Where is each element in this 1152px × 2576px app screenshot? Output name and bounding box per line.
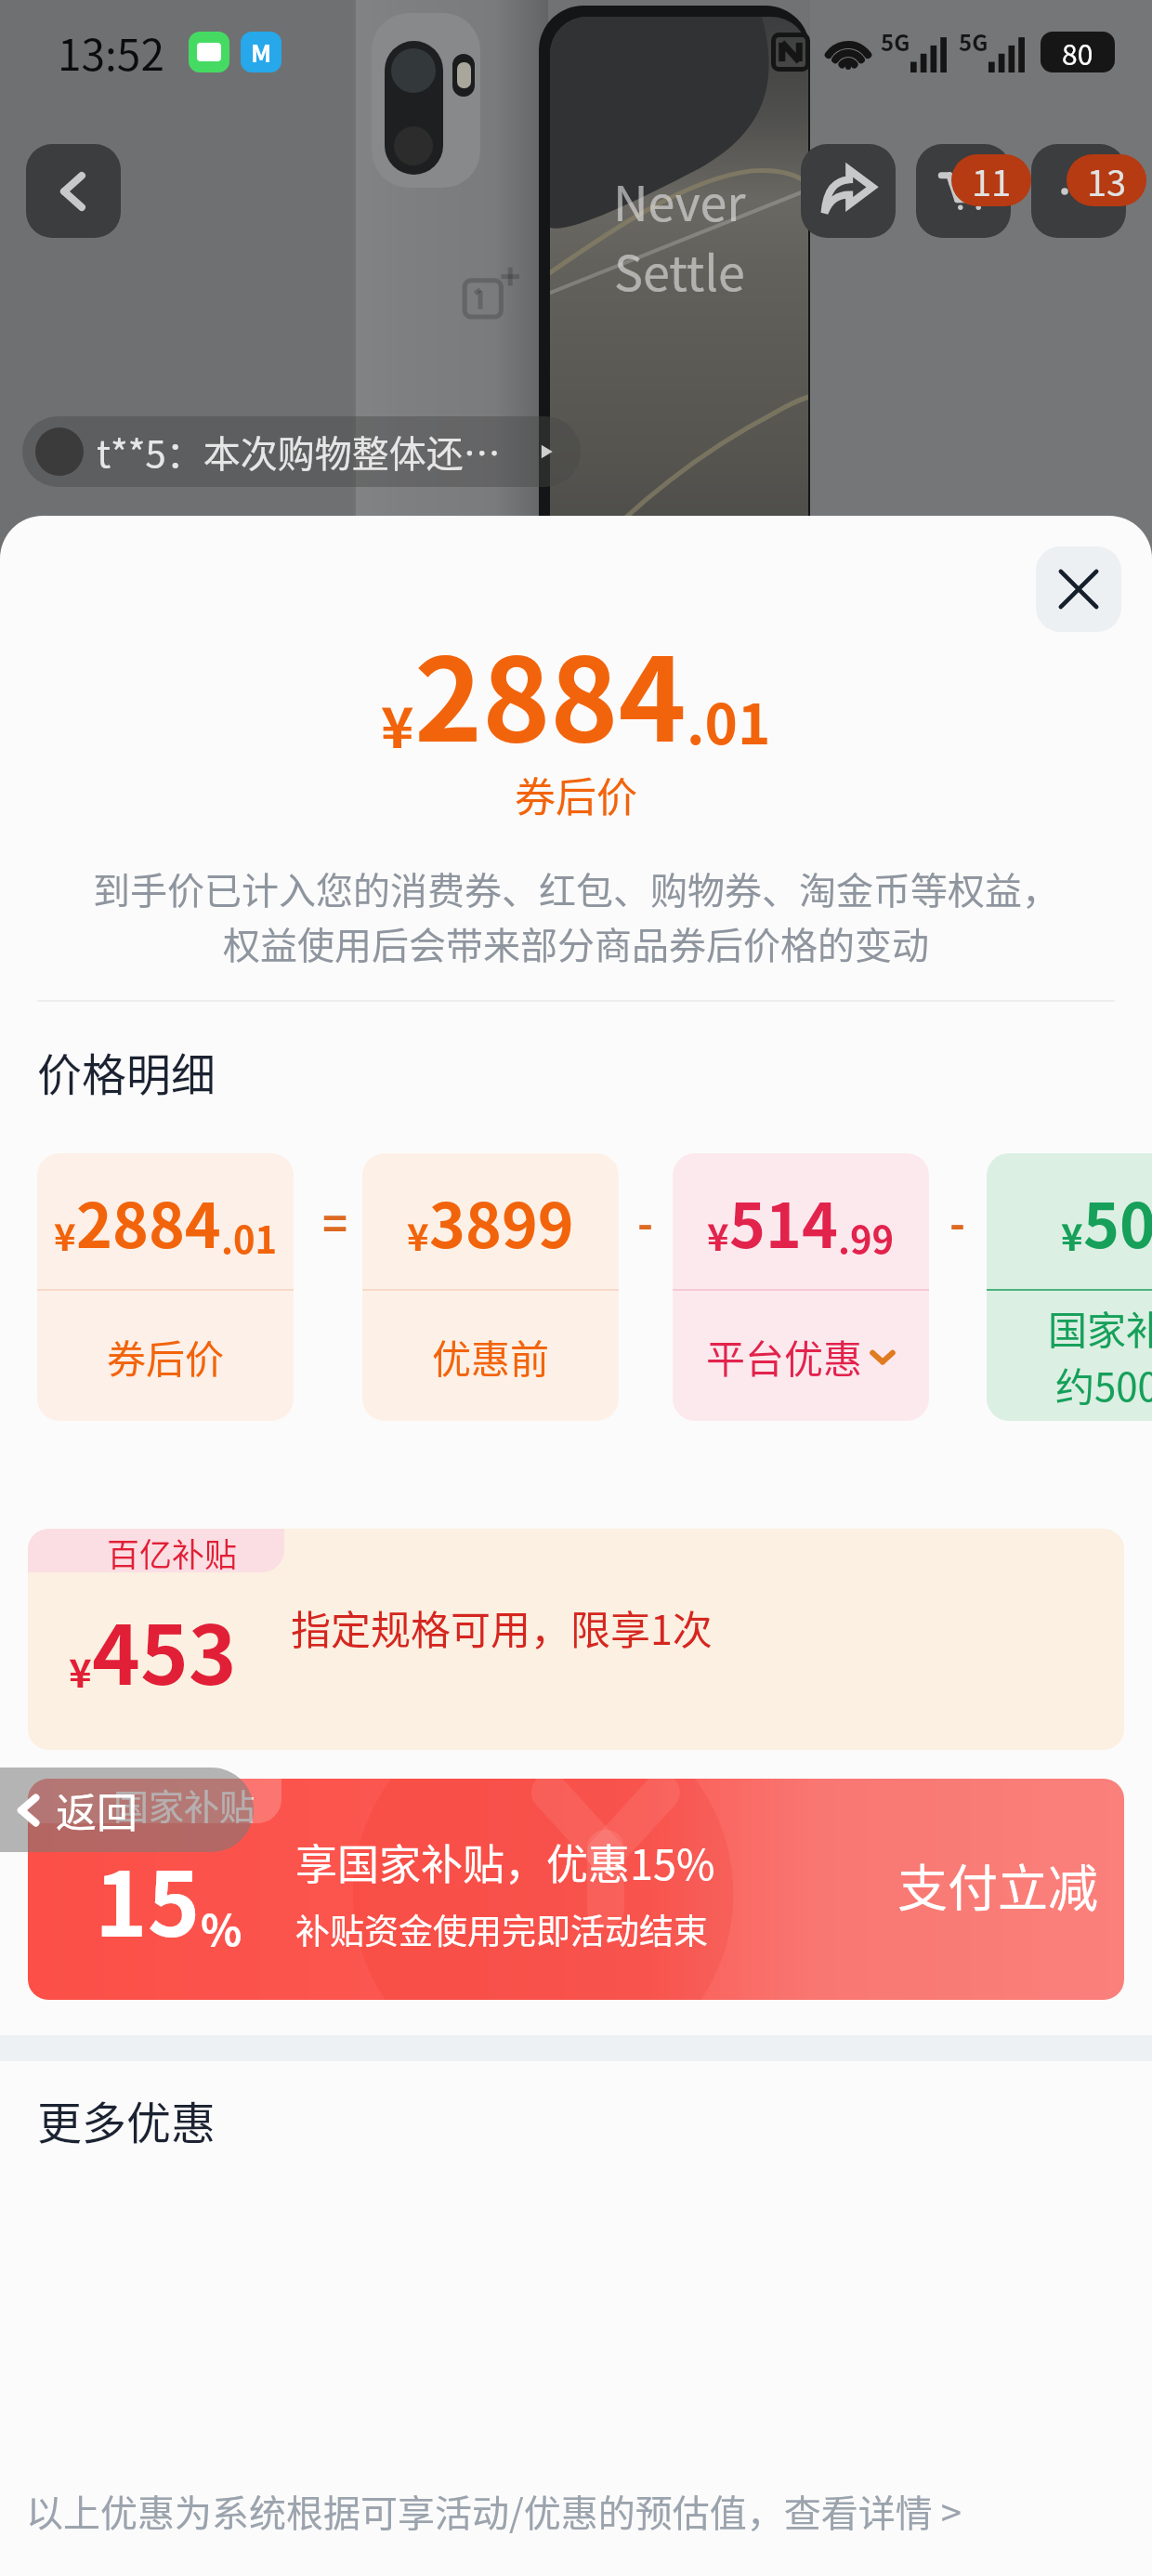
button[interactable]: t**5：本次购物整体还…: [22, 416, 581, 487]
button[interactable]: Back: [0, 1768, 254, 1852]
staticText: -: [949, 1190, 966, 1253]
staticText: 5G: [881, 25, 910, 58]
staticText: ¥: [54, 1208, 76, 1262]
staticText: Never: [613, 165, 746, 235]
staticText: 价格明细: [37, 1039, 216, 1104]
staticText: 2884: [76, 1176, 221, 1266]
staticText: ¥: [707, 1208, 729, 1262]
staticText: 11: [972, 155, 1012, 206]
staticText: 80: [1062, 33, 1093, 72]
button[interactable]: Back: [26, 144, 121, 238]
staticText: Settle: [614, 235, 745, 305]
staticText: .01: [687, 679, 771, 760]
staticText: 国家补贴: [1048, 1299, 1152, 1356]
staticText: 国家补贴: [113, 1779, 255, 1823]
staticText: 平台优惠: [706, 1328, 863, 1385]
staticText: 514: [729, 1176, 838, 1266]
staticText: 2884: [414, 608, 687, 775]
staticText: ¥: [69, 1642, 92, 1699]
staticText: 优惠前: [432, 1328, 550, 1385]
button[interactable]: More: [1031, 144, 1126, 238]
button[interactable]: 百亿补贴: [28, 1529, 1124, 1750]
staticText: 补贴资金使用完即活动结束: [295, 1904, 708, 1954]
staticText: 享国家补贴，优惠15%: [295, 1832, 715, 1892]
button[interactable]: ¥: [362, 1153, 619, 1421]
staticText: 13: [1087, 155, 1127, 206]
button[interactable]: Close: [1036, 546, 1121, 632]
button[interactable]: Share: [801, 144, 896, 238]
staticText: 5G: [959, 25, 988, 58]
button[interactable]: ¥: [37, 1153, 294, 1421]
staticText: ¥: [407, 1208, 429, 1262]
staticText: 以上优惠为系统根据可享活动/优惠的预估值，查看详情 >: [26, 2484, 962, 2538]
staticText: 支付立减: [897, 1848, 1098, 1921]
staticText: ¥: [381, 683, 414, 764]
staticText: 指定规格可用，限享1次: [291, 1598, 713, 1656]
staticText: 约500元: [1055, 1356, 1152, 1413]
button[interactable]: ¥: [987, 1153, 1152, 1421]
button[interactable]: 国家补贴: [28, 1779, 1124, 2000]
staticText: =: [322, 1190, 348, 1253]
staticText: 13:52: [58, 21, 164, 84]
staticText: %: [201, 1897, 242, 1959]
staticText: .01: [221, 1211, 278, 1265]
staticText: t**5：本次购物整体还…: [97, 425, 501, 479]
staticText: ¥: [1061, 1208, 1083, 1262]
staticText: -: [637, 1190, 654, 1253]
staticText: 返回: [56, 1781, 137, 1840]
button[interactable]: Cart: [916, 144, 1011, 238]
staticText: 到手价已计入您的消费券、红包、购物券、淘金币等权益， 权益使用后会带来部分商品券…: [56, 861, 1096, 970]
staticText: M: [251, 34, 272, 70]
staticText: 15: [95, 1833, 201, 1963]
staticText: .99: [838, 1211, 895, 1265]
staticText: 453: [92, 1590, 237, 1708]
staticText: 百亿补贴: [107, 1529, 238, 1572]
staticText: 更多优惠: [37, 2087, 216, 2152]
button[interactable]: ¥: [673, 1153, 929, 1421]
staticText: 500: [1083, 1176, 1152, 1266]
staticText: 券后价: [0, 765, 1152, 824]
staticText: 3899: [429, 1176, 574, 1266]
staticText: 券后价: [107, 1328, 225, 1385]
